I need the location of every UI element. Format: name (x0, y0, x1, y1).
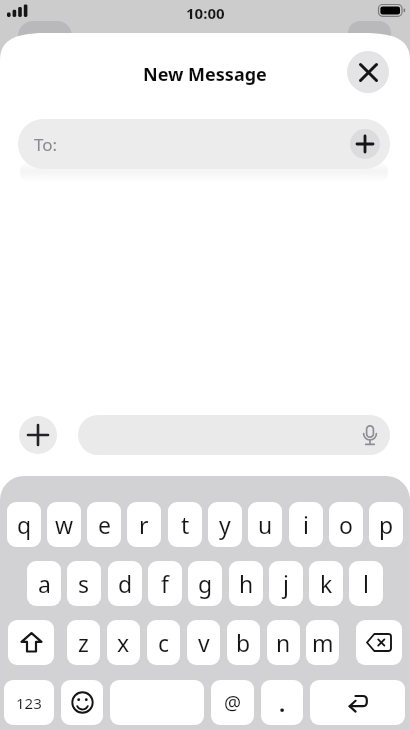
staticText: j (283, 568, 289, 599)
staticText: v (198, 627, 210, 658)
button[interactable]: g (188, 561, 222, 606)
staticText: f (161, 568, 169, 599)
button[interactable]: q (7, 502, 41, 547)
staticText: c (158, 627, 170, 658)
button[interactable] (350, 129, 380, 159)
button[interactable] (356, 620, 402, 665)
staticText: z (78, 627, 89, 658)
button[interactable]: t (168, 502, 202, 547)
button[interactable] (8, 620, 54, 665)
staticText: h (239, 568, 254, 599)
button[interactable]: x (107, 620, 140, 665)
staticText: y (219, 509, 231, 540)
button[interactable]: y (208, 502, 242, 547)
staticText: l (363, 568, 369, 599)
staticText: p (379, 509, 394, 540)
button[interactable]: f (148, 561, 182, 606)
staticText: k (320, 568, 333, 599)
button[interactable]: n (267, 620, 300, 665)
button[interactable] (347, 51, 389, 93)
button[interactable]: j (269, 561, 303, 606)
button[interactable]: s (67, 561, 101, 606)
button[interactable]: i (289, 502, 323, 547)
button[interactable]: u (248, 502, 282, 547)
staticText: @ (224, 690, 242, 716)
button[interactable]: d (108, 561, 142, 606)
button[interactable]: k (309, 561, 343, 606)
button[interactable] (110, 680, 204, 725)
staticText: x (117, 627, 130, 658)
staticText: 10:00 (186, 3, 225, 23)
button[interactable]: a (27, 561, 61, 606)
button[interactable]: w (47, 502, 81, 547)
button[interactable] (61, 680, 103, 725)
staticText: r (139, 509, 149, 540)
staticText: b (236, 627, 251, 658)
button[interactable]: r (127, 502, 161, 547)
button[interactable]: . (261, 680, 303, 725)
staticText: New Message (143, 62, 267, 87)
staticText: u (258, 509, 273, 540)
button[interactable]: c (147, 620, 180, 665)
staticText: d (118, 568, 133, 599)
button[interactable]: h (229, 561, 263, 606)
button[interactable]: e (87, 502, 121, 547)
staticText: 123 (16, 693, 42, 713)
staticText: q (17, 509, 32, 540)
button[interactable]: z (67, 620, 100, 665)
button[interactable] (78, 415, 390, 455)
button[interactable]: o (329, 502, 363, 547)
staticText: i (303, 509, 309, 540)
staticText: n (276, 627, 291, 658)
button[interactable] (19, 416, 57, 454)
staticText: o (339, 509, 353, 540)
staticText: s (78, 568, 90, 599)
staticText: t (181, 509, 190, 540)
button[interactable]: v (187, 620, 220, 665)
button[interactable]: 123 (4, 680, 54, 725)
button[interactable]: To: (18, 119, 390, 169)
staticText: g (198, 568, 213, 599)
staticText: To: (34, 133, 58, 156)
button[interactable]: b (227, 620, 260, 665)
staticText: . (279, 688, 286, 718)
staticText: e (98, 509, 111, 540)
button[interactable]: p (369, 502, 403, 547)
staticText: m (312, 627, 334, 658)
button[interactable]: @ (211, 680, 254, 725)
button[interactable] (310, 680, 405, 725)
staticText: w (55, 509, 74, 540)
staticText: a (38, 568, 51, 599)
button[interactable]: m (306, 620, 339, 665)
button[interactable]: l (349, 561, 383, 606)
